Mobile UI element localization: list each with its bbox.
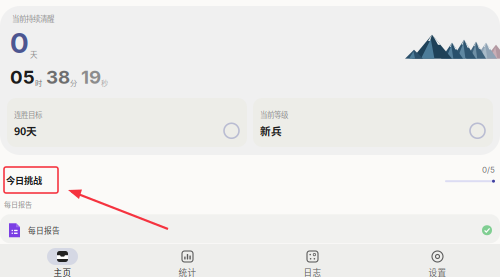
- button[interactable]: 每日报告: [0, 214, 500, 243]
- button[interactable]: 统计: [125, 244, 250, 277]
- staticText: 秒: [101, 77, 108, 88]
- staticText: 分: [70, 77, 77, 88]
- staticText: 38: [46, 66, 70, 88]
- staticText: 当前等级: [260, 109, 288, 120]
- button[interactable]: 设置: [375, 244, 500, 277]
- staticText: 0: [10, 26, 29, 60]
- button[interactable]: 当前等级: [253, 98, 493, 147]
- staticText: 连胜目标: [14, 109, 42, 120]
- staticText: 当前持续清醒: [12, 13, 54, 24]
- staticText: 90天: [14, 123, 37, 138]
- staticText: 统计: [178, 266, 196, 277]
- button[interactable]: 日志: [250, 244, 375, 277]
- staticText: 每日报告: [4, 199, 32, 209]
- staticText: 时: [35, 77, 42, 88]
- staticText: 天: [30, 49, 37, 60]
- staticText: 设置: [428, 266, 446, 277]
- staticText: 日志: [303, 266, 321, 277]
- button[interactable]: 连胜目标: [7, 98, 247, 147]
- staticText: 主页: [53, 266, 71, 277]
- staticText: 每日报告: [28, 225, 60, 236]
- staticText: 今日挑战: [6, 173, 42, 187]
- staticText: 0/5: [482, 165, 495, 175]
- staticText: 19: [81, 66, 101, 88]
- staticText: 新兵: [260, 123, 282, 138]
- staticText: 05: [10, 66, 35, 88]
- button[interactable]: 主页: [0, 244, 125, 277]
